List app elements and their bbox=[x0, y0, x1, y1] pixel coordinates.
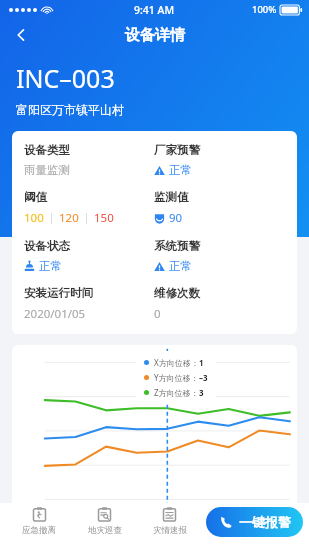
staticText: INC–003 bbox=[16, 61, 115, 95]
button[interactable]: 一键报警 bbox=[206, 507, 303, 537]
button[interactable]: X方向位移： bbox=[12, 345, 297, 511]
staticText: 150 bbox=[94, 210, 114, 226]
staticText: 安装运行时间 bbox=[24, 286, 93, 300]
staticText: 正常 bbox=[169, 163, 192, 177]
staticText: X方向位移： bbox=[154, 357, 199, 368]
staticText: 维修次数 bbox=[154, 286, 200, 300]
button[interactable]: Back bbox=[5, 19, 37, 51]
staticText: 120 bbox=[59, 210, 79, 226]
staticText: 应急撤离 bbox=[22, 525, 56, 536]
staticText: –3 bbox=[199, 372, 208, 383]
staticText: 富阳区万市镇平山村 bbox=[16, 102, 124, 117]
staticText: 厂家预警 bbox=[154, 143, 200, 157]
staticText: 设备详情 bbox=[125, 26, 185, 45]
staticText: 9:41 AM bbox=[134, 3, 175, 17]
staticText: 3 bbox=[199, 387, 204, 398]
staticText: 正常 bbox=[39, 259, 62, 273]
staticText: 0 bbox=[154, 306, 161, 322]
button[interactable]: 设备类型 bbox=[12, 131, 297, 334]
staticText: 90 bbox=[169, 210, 183, 226]
button[interactable]: 地灾巡查 bbox=[72, 503, 137, 540]
staticText: 1 bbox=[199, 357, 204, 368]
staticText: 2020/01/05 bbox=[24, 306, 86, 322]
staticText: 100 bbox=[24, 210, 44, 226]
staticText: 系统预警 bbox=[154, 239, 200, 253]
staticText: 地灾巡查 bbox=[88, 525, 122, 536]
staticText: 阈值 bbox=[24, 190, 47, 204]
staticText: 一键报警 bbox=[239, 514, 291, 530]
button[interactable]: 灾情速报 bbox=[137, 503, 202, 540]
staticText: Y方向位移： bbox=[154, 372, 199, 383]
staticText: 设备状态 bbox=[24, 239, 70, 253]
staticText: 灾情速报 bbox=[153, 525, 187, 536]
staticText: Z方向位移： bbox=[154, 387, 199, 398]
button[interactable]: 应急撤离 bbox=[6, 503, 72, 540]
staticText: 监测值 bbox=[154, 190, 189, 204]
staticText: 100% bbox=[252, 3, 277, 16]
staticText: 雨量监测 bbox=[24, 163, 70, 177]
staticText: 正常 bbox=[169, 259, 192, 273]
staticText: 设备类型 bbox=[24, 143, 70, 157]
